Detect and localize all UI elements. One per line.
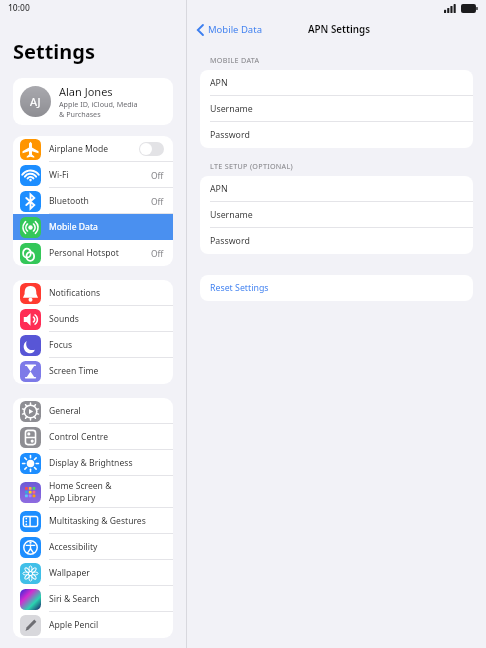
button[interactable]: Mobile Data	[197, 23, 262, 36]
button[interactable]: Focus	[13, 332, 173, 358]
staticText: Home Screen &	[49, 480, 112, 492]
staticText: Focus	[49, 339, 73, 351]
button[interactable]: Password	[200, 228, 473, 254]
button[interactable]: Password	[200, 122, 473, 148]
staticText: Password	[210, 129, 250, 141]
button[interactable]: APN	[200, 176, 473, 202]
staticText: General	[49, 405, 81, 417]
button[interactable]: Accessibility	[13, 534, 173, 560]
button[interactable]: Home Screen &	[13, 476, 173, 508]
staticText: Password	[210, 235, 250, 247]
staticText: Mobile Data	[208, 23, 262, 36]
staticText: APN	[210, 77, 228, 89]
button[interactable]: Reset Settings	[200, 275, 473, 301]
staticText: Off	[151, 196, 164, 207]
staticText: Off	[151, 248, 164, 259]
button[interactable]: Mobile Data	[13, 214, 173, 240]
staticText: LTE SETUP (OPTIONAL)	[210, 161, 294, 171]
staticText: Off	[151, 170, 164, 181]
button[interactable]: Personal Hotspot	[13, 240, 173, 266]
staticText: Wallpaper	[49, 567, 90, 579]
staticText: Personal Hotspot	[49, 247, 119, 259]
button[interactable]: Control Centre	[13, 424, 173, 450]
staticText: Reset Settings	[210, 282, 269, 294]
staticText: APN	[210, 183, 228, 195]
button[interactable]: Screen Time	[13, 358, 173, 384]
button[interactable]: Multitasking & Gestures	[13, 508, 173, 534]
button[interactable]: General	[13, 398, 173, 424]
staticText: Username	[210, 103, 253, 115]
staticText: Multitasking & Gestures	[49, 515, 146, 527]
staticText: Apple Pencil	[49, 619, 99, 631]
staticText: Control Centre	[49, 431, 108, 443]
staticText: Mobile Data	[49, 221, 98, 233]
staticText: Wi-Fi	[49, 169, 69, 181]
button[interactable]: AJ	[13, 78, 173, 125]
button[interactable]: Airplane Mode	[13, 136, 173, 162]
staticText: 10:00	[8, 2, 30, 14]
button[interactable]: Wi-Fi	[13, 162, 173, 188]
staticText: Airplane Mode	[49, 143, 109, 155]
button[interactable]: Wallpaper	[13, 560, 173, 586]
staticText: Bluetooth	[49, 195, 89, 207]
button[interactable]: Username	[200, 202, 473, 228]
button[interactable]: Sounds	[13, 306, 173, 332]
button[interactable]: APN	[200, 70, 473, 96]
button[interactable]: Airplane Mode toggle	[139, 142, 164, 156]
button[interactable]: Notifications	[13, 280, 173, 306]
staticText: MOBILE DATA	[210, 55, 260, 65]
staticText: Alan Jones	[59, 84, 113, 99]
staticText: App Library	[49, 492, 96, 504]
staticText: APN Settings	[308, 23, 370, 36]
button[interactable]: Bluetooth	[13, 188, 173, 214]
staticText: AJ	[30, 94, 41, 109]
staticText: Display & Brightness	[49, 457, 133, 469]
staticText: Siri & Search	[49, 593, 100, 605]
button[interactable]: Username	[200, 96, 473, 122]
staticText: Screen Time	[49, 365, 99, 377]
staticText: Notifications	[49, 287, 101, 299]
button[interactable]: Display & Brightness	[13, 450, 173, 476]
staticText: Sounds	[49, 313, 79, 325]
button[interactable]: Siri & Search	[13, 586, 173, 612]
staticText: Username	[210, 209, 253, 221]
staticText: & Purchases	[59, 109, 101, 119]
staticText: Accessibility	[49, 541, 98, 553]
staticText: Apple ID, iCloud, Media	[59, 99, 138, 109]
staticText: Settings	[13, 38, 95, 65]
button[interactable]: Apple Pencil	[13, 612, 173, 638]
